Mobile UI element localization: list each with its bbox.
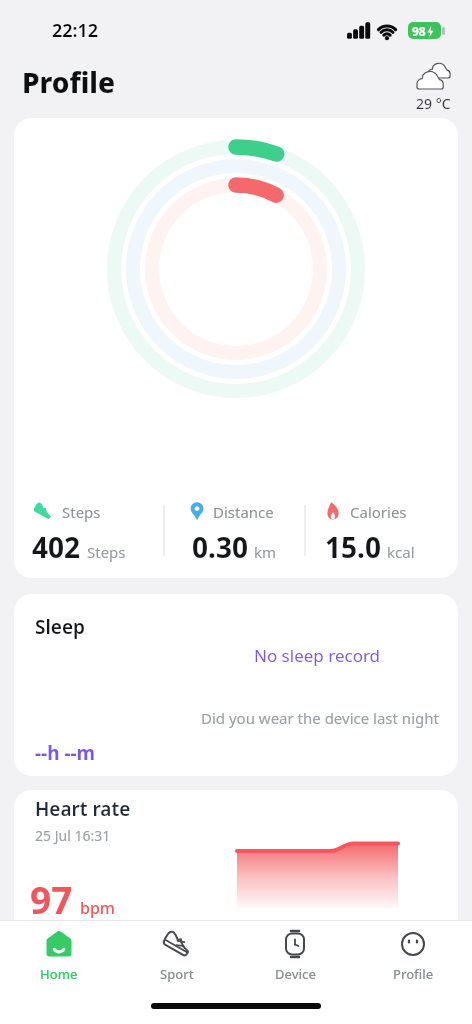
staticText: --h --m <box>35 740 96 766</box>
staticText: 0.30 <box>192 528 248 566</box>
staticText: Sport <box>160 965 194 983</box>
staticText: 15.0 <box>325 528 381 566</box>
button[interactable]: Device <box>236 922 354 988</box>
staticText: bpm <box>80 897 115 919</box>
staticText: 29 °C <box>416 94 451 113</box>
staticText: Distance <box>213 502 274 522</box>
button[interactable] <box>14 594 458 776</box>
staticText: 22:12 <box>52 18 99 43</box>
staticText: Steps <box>62 502 101 522</box>
staticText: Heart rate <box>35 796 131 822</box>
staticText: Profile <box>393 965 434 983</box>
staticText: Calories <box>350 502 407 522</box>
staticText: 98 <box>412 23 426 39</box>
staticText: Sleep <box>35 614 85 640</box>
staticText: Did you wear the device last night <box>201 708 439 728</box>
button[interactable]: Sport <box>118 922 236 988</box>
staticText: 402 <box>32 528 81 566</box>
staticText: No sleep record <box>254 644 381 667</box>
staticText: Steps <box>87 542 126 562</box>
button[interactable] <box>14 790 458 1024</box>
button[interactable]: Profile <box>354 922 472 988</box>
button[interactable] <box>14 118 458 578</box>
staticText: 25 Jul 16:31 <box>35 826 111 845</box>
staticText: Profile <box>22 63 115 101</box>
staticText: Device <box>275 965 316 983</box>
staticText: kcal <box>387 542 415 562</box>
staticText: km <box>254 542 277 562</box>
button[interactable]: Home <box>0 922 118 988</box>
staticText: Home <box>40 965 78 983</box>
staticText: 97 <box>30 874 73 924</box>
